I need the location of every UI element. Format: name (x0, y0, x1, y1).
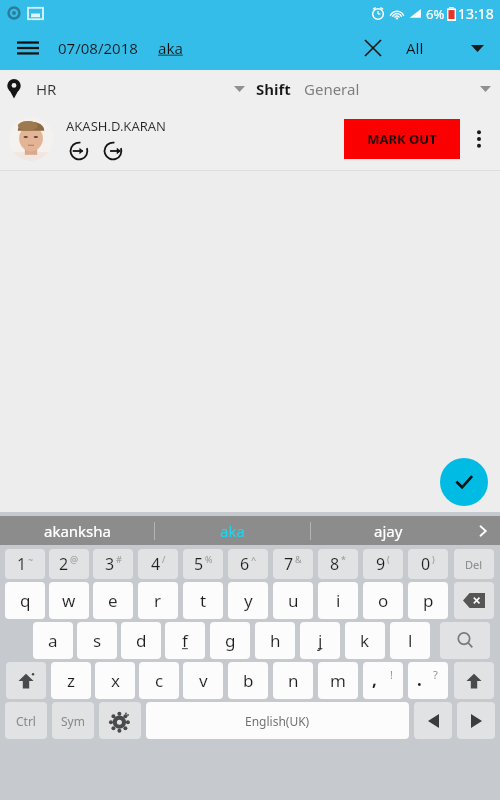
staticText: 6 (240, 553, 250, 575)
staticText: @ (70, 553, 79, 565)
button[interactable]: All (406, 38, 424, 58)
button[interactable]: t (183, 582, 223, 619)
button[interactable]: Move cursor right (457, 702, 495, 739)
button[interactable]: Menu (12, 32, 44, 64)
button[interactable]: aka (155, 516, 310, 545)
button[interactable]: f (165, 622, 205, 659)
staticText: e (108, 589, 118, 612)
staticText: AKASH.D.KARAN (66, 117, 166, 135)
button[interactable]: Ctrl (5, 702, 47, 739)
button[interactable]: k (345, 622, 385, 659)
staticText: v (199, 669, 208, 692)
staticText: MARK OUT (367, 130, 437, 148)
button[interactable]: 2 (49, 549, 89, 579)
button[interactable]: Mark in (66, 138, 92, 164)
staticText: 5 (194, 553, 204, 575)
button[interactable]: Backspace (454, 582, 494, 619)
button[interactable]: Caps lock (454, 662, 494, 699)
button[interactable]: Search (440, 622, 490, 659)
button[interactable]: y (228, 582, 268, 619)
button[interactable]: English(UK) (146, 702, 409, 739)
button[interactable]: g (210, 622, 250, 659)
button[interactable]: More suggestions (466, 516, 500, 545)
button[interactable]: Move cursor left (414, 702, 452, 739)
staticText: g (225, 629, 236, 652)
staticText: Ctrl (16, 713, 36, 729)
staticText: Del (465, 557, 483, 572)
button[interactable]: l (390, 622, 430, 659)
button[interactable]: n (273, 662, 313, 699)
button[interactable]: r (138, 582, 178, 619)
staticText: . (417, 668, 422, 691)
button[interactable]: 3 (93, 549, 133, 579)
button[interactable]: z (51, 662, 91, 699)
button[interactable]: Keyboard settings (99, 702, 141, 739)
button[interactable]: 1 (5, 549, 45, 579)
button[interactable]: o (363, 582, 403, 619)
button[interactable]: 7 (273, 549, 313, 579)
button[interactable]: a (33, 622, 73, 659)
staticText: p (423, 589, 434, 612)
button[interactable]: i (318, 582, 358, 619)
staticText: x (111, 669, 120, 692)
staticText: o (378, 589, 389, 612)
button[interactable]: 9 (363, 549, 403, 579)
button[interactable]: q (5, 582, 45, 619)
button[interactable]: akanksha (0, 516, 154, 545)
staticText: ) (432, 553, 435, 565)
button[interactable]: p (408, 582, 448, 619)
button[interactable]: d (121, 622, 161, 659)
staticText: d (136, 629, 147, 652)
button[interactable]: v (183, 662, 223, 699)
button[interactable]: ajay (311, 516, 466, 545)
staticText: 8 (330, 553, 340, 575)
button[interactable]: , (363, 662, 403, 699)
staticText: i (336, 589, 341, 612)
staticText: % (205, 553, 213, 565)
button[interactable]: s (77, 622, 117, 659)
staticText: Sym (61, 713, 85, 729)
button[interactable]: Confirm (440, 458, 488, 506)
button[interactable]: Location dropdown (226, 76, 252, 102)
button[interactable]: Delete (454, 549, 494, 579)
button[interactable]: x (95, 662, 135, 699)
staticText: 4 (151, 553, 161, 575)
staticText: f (182, 629, 188, 652)
button[interactable]: Sym (52, 702, 94, 739)
staticText: j (318, 629, 323, 652)
button[interactable]: w (49, 582, 89, 619)
button[interactable]: 5 (183, 549, 223, 579)
button[interactable]: HR (36, 79, 57, 99)
button[interactable]: 4 (138, 549, 178, 579)
button[interactable]: 0 (408, 549, 448, 579)
button[interactable]: General (304, 79, 360, 99)
button[interactable]: 8 (318, 549, 358, 579)
button[interactable]: Shift (6, 662, 46, 699)
button[interactable]: c (139, 662, 179, 699)
button[interactable]: MARK OUT (344, 119, 460, 159)
button[interactable]: h (255, 622, 295, 659)
button[interactable]: m (318, 662, 358, 699)
button[interactable]: e (93, 582, 133, 619)
staticText: 0 (421, 553, 431, 575)
staticText: 3 (105, 553, 115, 575)
staticText: l (408, 629, 413, 652)
button[interactable]: . (408, 662, 448, 699)
button[interactable]: Clear search (356, 31, 390, 65)
button[interactable]: Shift dropdown (472, 76, 498, 102)
button[interactable]: aka (158, 38, 183, 58)
button[interactable]: b (228, 662, 268, 699)
button[interactable]: u (273, 582, 313, 619)
button[interactable]: Filter dropdown (462, 33, 492, 63)
staticText: ? (433, 667, 438, 682)
button[interactable]: j (300, 622, 340, 659)
button[interactable]: Mark out (100, 138, 126, 164)
staticText: m (330, 669, 346, 692)
button[interactable]: More options (464, 124, 494, 154)
staticText: , (372, 668, 377, 691)
staticText: c (155, 669, 164, 692)
staticText: z (67, 669, 75, 692)
button[interactable]: 6 (228, 549, 268, 579)
staticText: t (200, 589, 207, 612)
button[interactable]: Employee photo (9, 117, 53, 161)
